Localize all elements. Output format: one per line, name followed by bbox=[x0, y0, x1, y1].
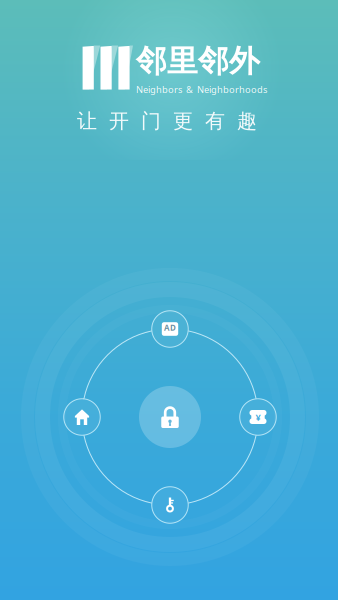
button[interactable]: Unlock door bbox=[139, 386, 201, 448]
staticText: ¥ bbox=[255, 411, 260, 423]
button[interactable]: Keys bbox=[149, 484, 191, 526]
staticText: Neighbors & Neighborhoods bbox=[136, 83, 267, 95]
button[interactable]: Home bbox=[61, 396, 103, 438]
staticText: AD bbox=[164, 322, 176, 333]
button[interactable]: Advertising bbox=[149, 308, 191, 350]
staticText: 邻里邻外 bbox=[136, 42, 260, 80]
staticText: 让 开 门 更 有 趣 bbox=[77, 109, 257, 133]
button[interactable]: Coupons bbox=[237, 396, 279, 438]
